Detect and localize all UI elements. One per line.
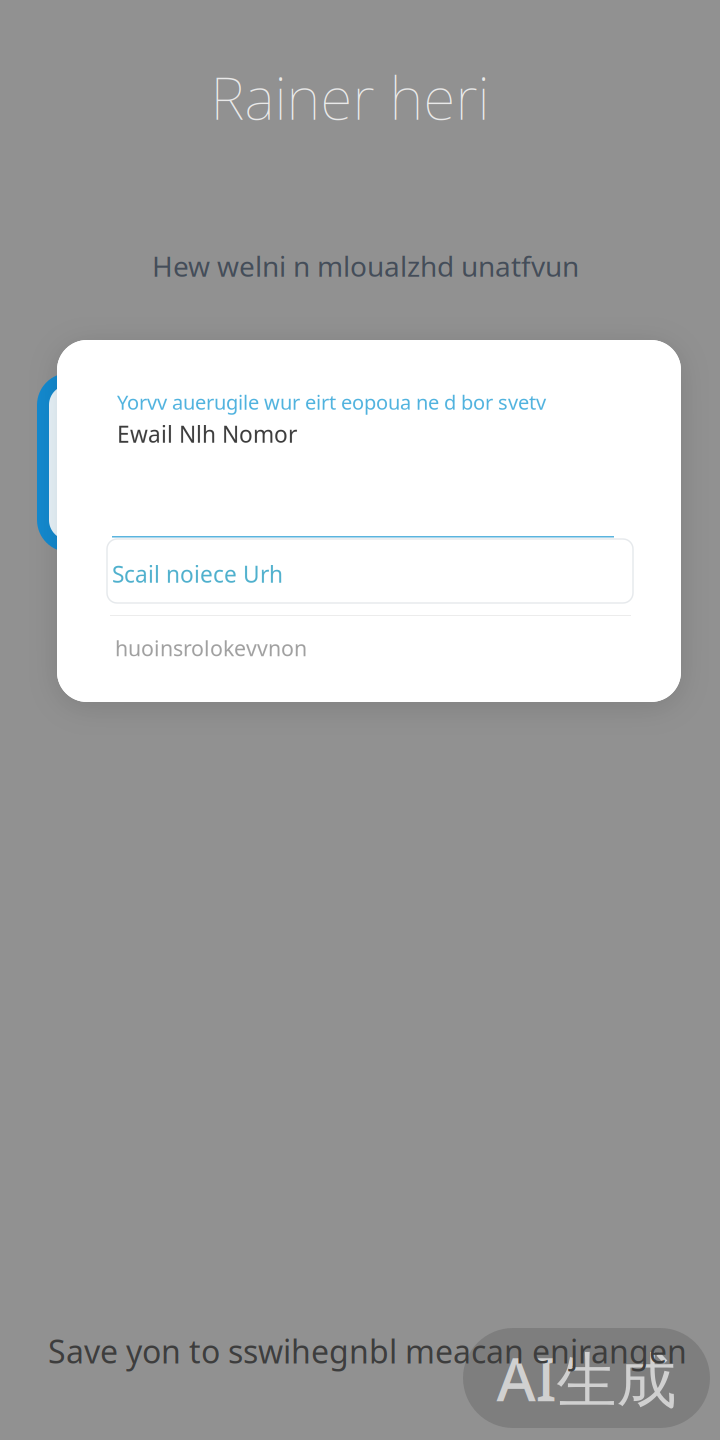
staticText: Rainer heri xyxy=(210,58,489,136)
staticText: Save yon to sswihegnbl meacan enjrangen xyxy=(48,1330,687,1372)
button[interactable]: Previous xyxy=(43,379,101,546)
staticText: AI生成 xyxy=(496,1338,676,1418)
staticText: Scail noiece Urh xyxy=(112,559,283,589)
staticText: Yorvv auerugile wur eirt eopoua ne d bor… xyxy=(117,389,546,415)
button[interactable]: Yorvv auerugile wur eirt eopoua ne d bor… xyxy=(117,390,637,414)
staticText: huoinsrolokevvnon xyxy=(115,634,307,662)
staticText: Hew welni n mloualzhd unatfvun xyxy=(152,247,579,285)
staticText: Ewail Nlh Nomor xyxy=(117,419,297,449)
button[interactable]: Text field xyxy=(107,539,633,603)
